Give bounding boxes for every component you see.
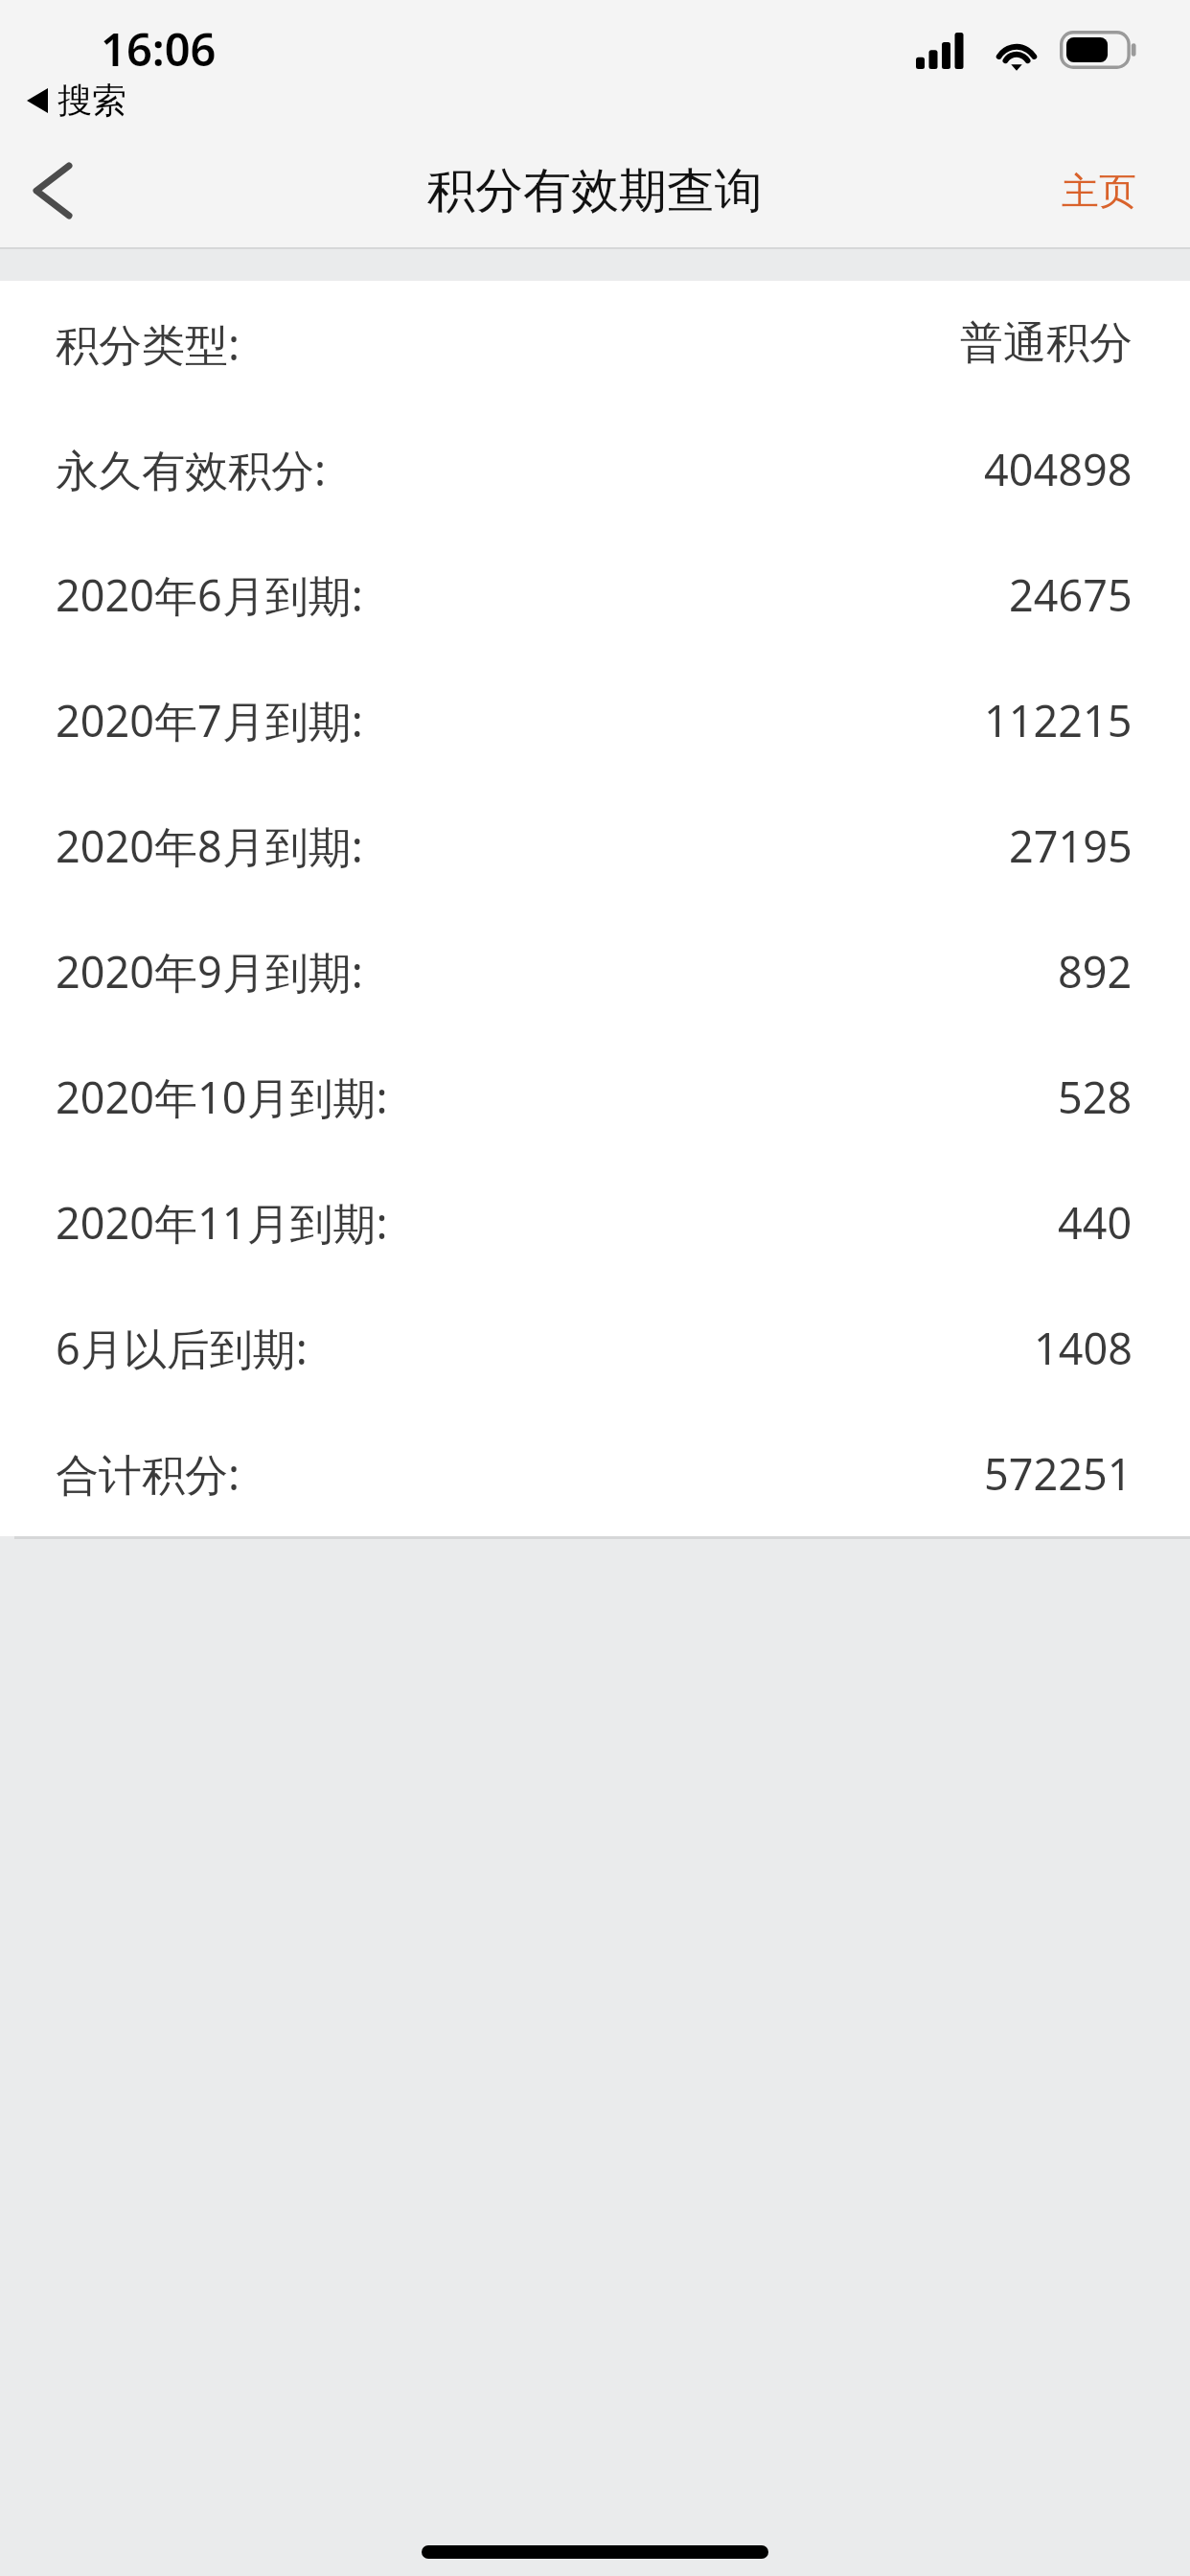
staticText: 主页 — [1062, 168, 1136, 215]
staticText: 27195 — [1009, 816, 1133, 875]
button[interactable]: 主页 — [1008, 134, 1190, 247]
staticText: 892 — [1058, 942, 1133, 1000]
staticText: 2020年10月到期: — [56, 1068, 388, 1126]
button[interactable]: 积分类型: — [0, 281, 1190, 406]
staticText: 永久有效积分: — [56, 440, 327, 498]
staticText: 528 — [1058, 1068, 1133, 1126]
staticText: 搜索 — [57, 79, 126, 122]
button[interactable]: 2020年6月到期: — [0, 532, 1190, 657]
button[interactable]: 合计积分: — [0, 1411, 1190, 1536]
button[interactable]: 永久有效积分: — [0, 406, 1190, 532]
staticText: 2020年7月到期: — [56, 691, 363, 749]
button[interactable]: 返回 — [0, 134, 105, 247]
staticText: 2020年6月到期: — [56, 565, 363, 624]
staticText: 1408 — [1034, 1319, 1133, 1377]
staticText: 积分类型: — [56, 314, 240, 373]
staticText: 572251 — [984, 1444, 1133, 1503]
staticText: 16:06 — [101, 18, 217, 80]
staticText: 404898 — [984, 440, 1133, 498]
button[interactable]: 返回 搜索 — [27, 79, 126, 122]
staticText: 112215 — [984, 691, 1133, 749]
button[interactable]: 2020年10月到期: — [0, 1034, 1190, 1160]
button[interactable]: 2020年9月到期: — [0, 908, 1190, 1034]
staticText: 24675 — [1009, 565, 1133, 624]
button[interactable]: 2020年7月到期: — [0, 657, 1190, 783]
staticText: 6月以后到期: — [56, 1319, 308, 1377]
button[interactable]: 2020年11月到期: — [0, 1160, 1190, 1285]
staticText: 普通积分 — [960, 316, 1133, 371]
staticText: 合计积分: — [56, 1444, 240, 1503]
button[interactable]: 2020年8月到期: — [0, 783, 1190, 908]
staticText: 2020年9月到期: — [56, 942, 363, 1000]
staticText: 积分有效期查询 — [427, 161, 763, 221]
staticText: 2020年8月到期: — [56, 816, 363, 875]
staticText: 2020年11月到期: — [56, 1193, 388, 1252]
staticText: 440 — [1058, 1193, 1133, 1252]
button[interactable]: 6月以后到期: — [0, 1285, 1190, 1411]
